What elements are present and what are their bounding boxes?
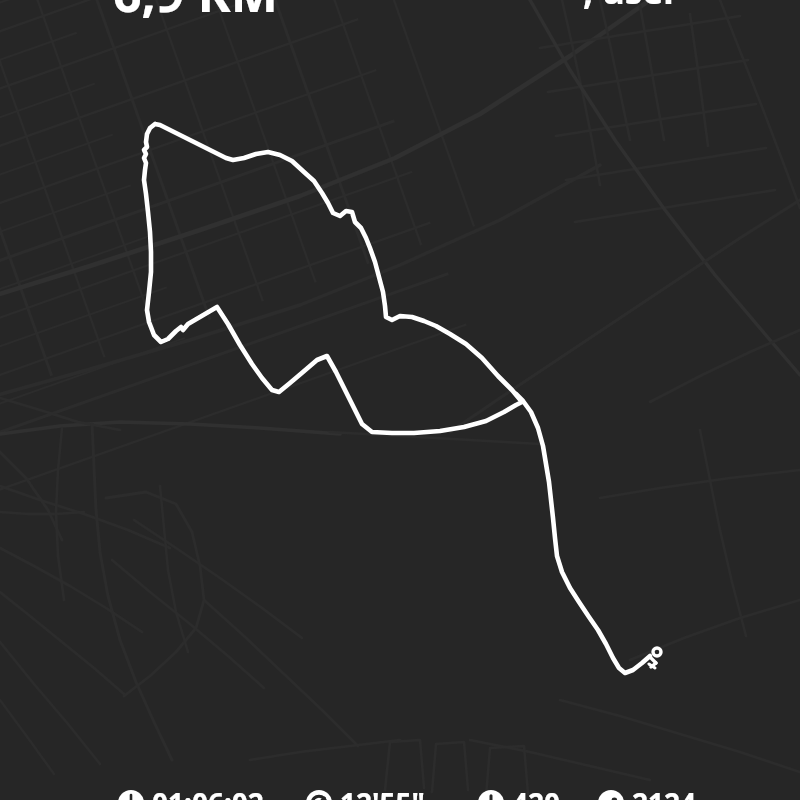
staticText: 6,9 KM	[113, 0, 278, 27]
button[interactable]: Steps	[598, 784, 697, 800]
other: Average pace	[306, 790, 332, 800]
button[interactable]: Average pace	[306, 784, 425, 800]
staticText: 01:06:02	[152, 784, 264, 800]
other: Calories burned	[478, 790, 504, 800]
staticText: 12'55"	[340, 784, 425, 800]
staticText: 420	[512, 784, 561, 800]
other: Duration	[118, 790, 144, 800]
button[interactable]: Calories burned	[478, 784, 561, 800]
button[interactable]: Duration	[118, 784, 264, 800]
staticText: , user	[583, 0, 679, 15]
staticText: 2124	[632, 784, 697, 800]
button[interactable]: Activity map	[0, 0, 800, 800]
other: Steps	[598, 790, 624, 800]
